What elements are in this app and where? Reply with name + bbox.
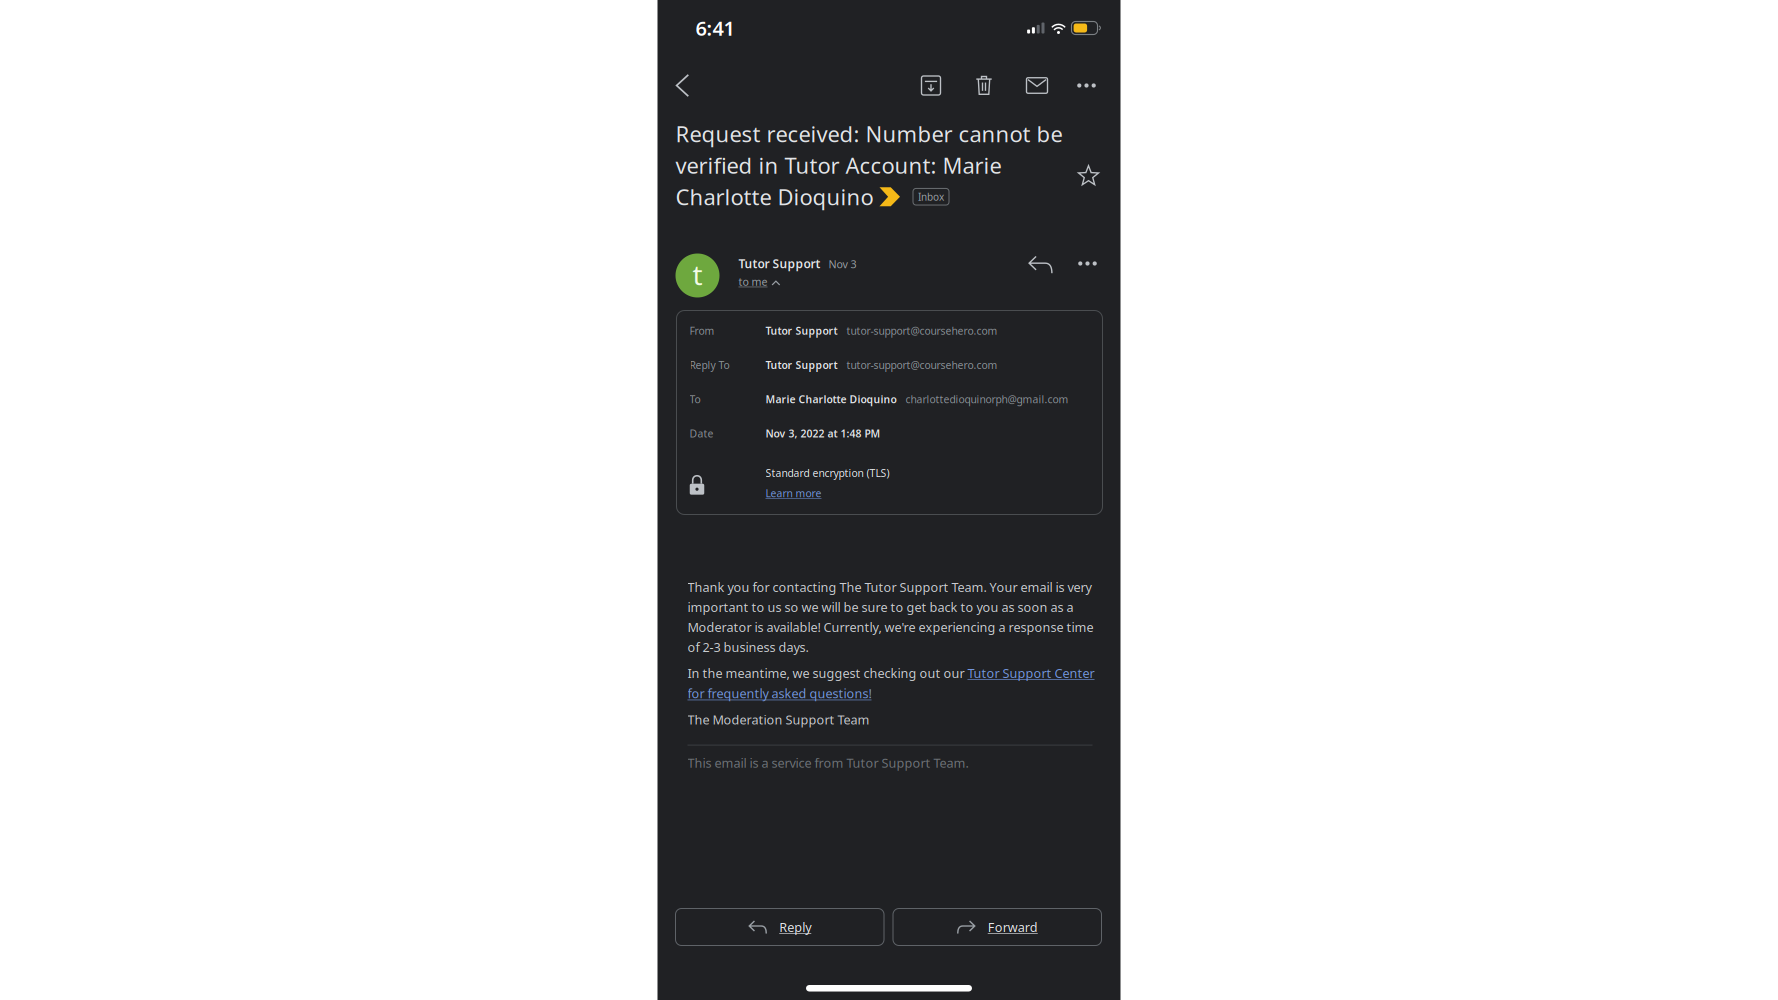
staticText: The Moderation Support Team bbox=[687, 711, 869, 728]
button[interactable]: Delete bbox=[957, 63, 1010, 107]
button[interactable]: Star bbox=[1070, 158, 1106, 194]
staticText: Tutor Support bbox=[738, 255, 820, 272]
staticText: Reply bbox=[779, 918, 811, 936]
staticText: t bbox=[692, 255, 702, 293]
button[interactable]: Forward bbox=[893, 908, 1101, 945]
staticText: Nov 3 bbox=[828, 257, 856, 271]
staticText: tutor-support@coursehero.com bbox=[846, 358, 997, 372]
staticText: verified in Tutor Account: Marie bbox=[675, 150, 1001, 180]
button[interactable]: Archive bbox=[904, 63, 957, 107]
button[interactable]: Mark as unread bbox=[1010, 63, 1063, 107]
staticText: Nov 3, 2022 at 1:48 PM bbox=[765, 426, 880, 441]
staticText: Inbox bbox=[918, 190, 944, 203]
staticText: This email is a service from Tutor Suppo… bbox=[687, 754, 968, 771]
staticText: From bbox=[689, 324, 714, 338]
staticText: Forward bbox=[988, 918, 1038, 936]
staticText: In the meantime, we suggest checking out… bbox=[687, 664, 967, 682]
staticText: important to us so we will be sure to ge… bbox=[687, 598, 1073, 616]
staticText: Date bbox=[689, 426, 713, 441]
staticText: tutor-support@coursehero.com bbox=[846, 324, 997, 338]
staticText: Thank you for contacting The Tutor Suppo… bbox=[687, 578, 1091, 596]
button[interactable]: to me bbox=[738, 272, 780, 290]
button[interactable]: Reply bbox=[675, 908, 884, 945]
staticText: Reply To bbox=[689, 358, 729, 372]
staticText: 6:41 bbox=[695, 14, 734, 42]
staticText: Charlotte Dioquino bbox=[675, 182, 873, 212]
staticText: Tutor Support Center bbox=[967, 664, 1094, 682]
staticText: Standard encryption (TLS) bbox=[765, 466, 889, 480]
staticText: for frequently asked questions! bbox=[687, 685, 871, 702]
staticText: charlottedioquinorph@gmail.com bbox=[905, 392, 1068, 406]
button[interactable]: Reply bbox=[1014, 246, 1066, 282]
staticText: Tutor Support bbox=[765, 358, 837, 372]
button[interactable]: More options bbox=[1063, 63, 1109, 107]
button[interactable]: Learn more bbox=[765, 483, 821, 503]
button[interactable]: Back bbox=[666, 63, 698, 107]
staticText: to me bbox=[738, 274, 767, 289]
staticText: Moderator is available! Currently, we're… bbox=[687, 618, 1093, 636]
staticText: To bbox=[689, 392, 700, 406]
button[interactable]: More options for this message bbox=[1066, 245, 1108, 281]
staticText: of 2-3 business days. bbox=[687, 638, 808, 656]
staticText: Marie Charlotte Dioquino bbox=[765, 392, 896, 406]
staticText: Tutor Support bbox=[765, 324, 837, 338]
staticText: Learn more bbox=[765, 486, 821, 500]
staticText: Request received: Number cannot be bbox=[675, 119, 1062, 149]
